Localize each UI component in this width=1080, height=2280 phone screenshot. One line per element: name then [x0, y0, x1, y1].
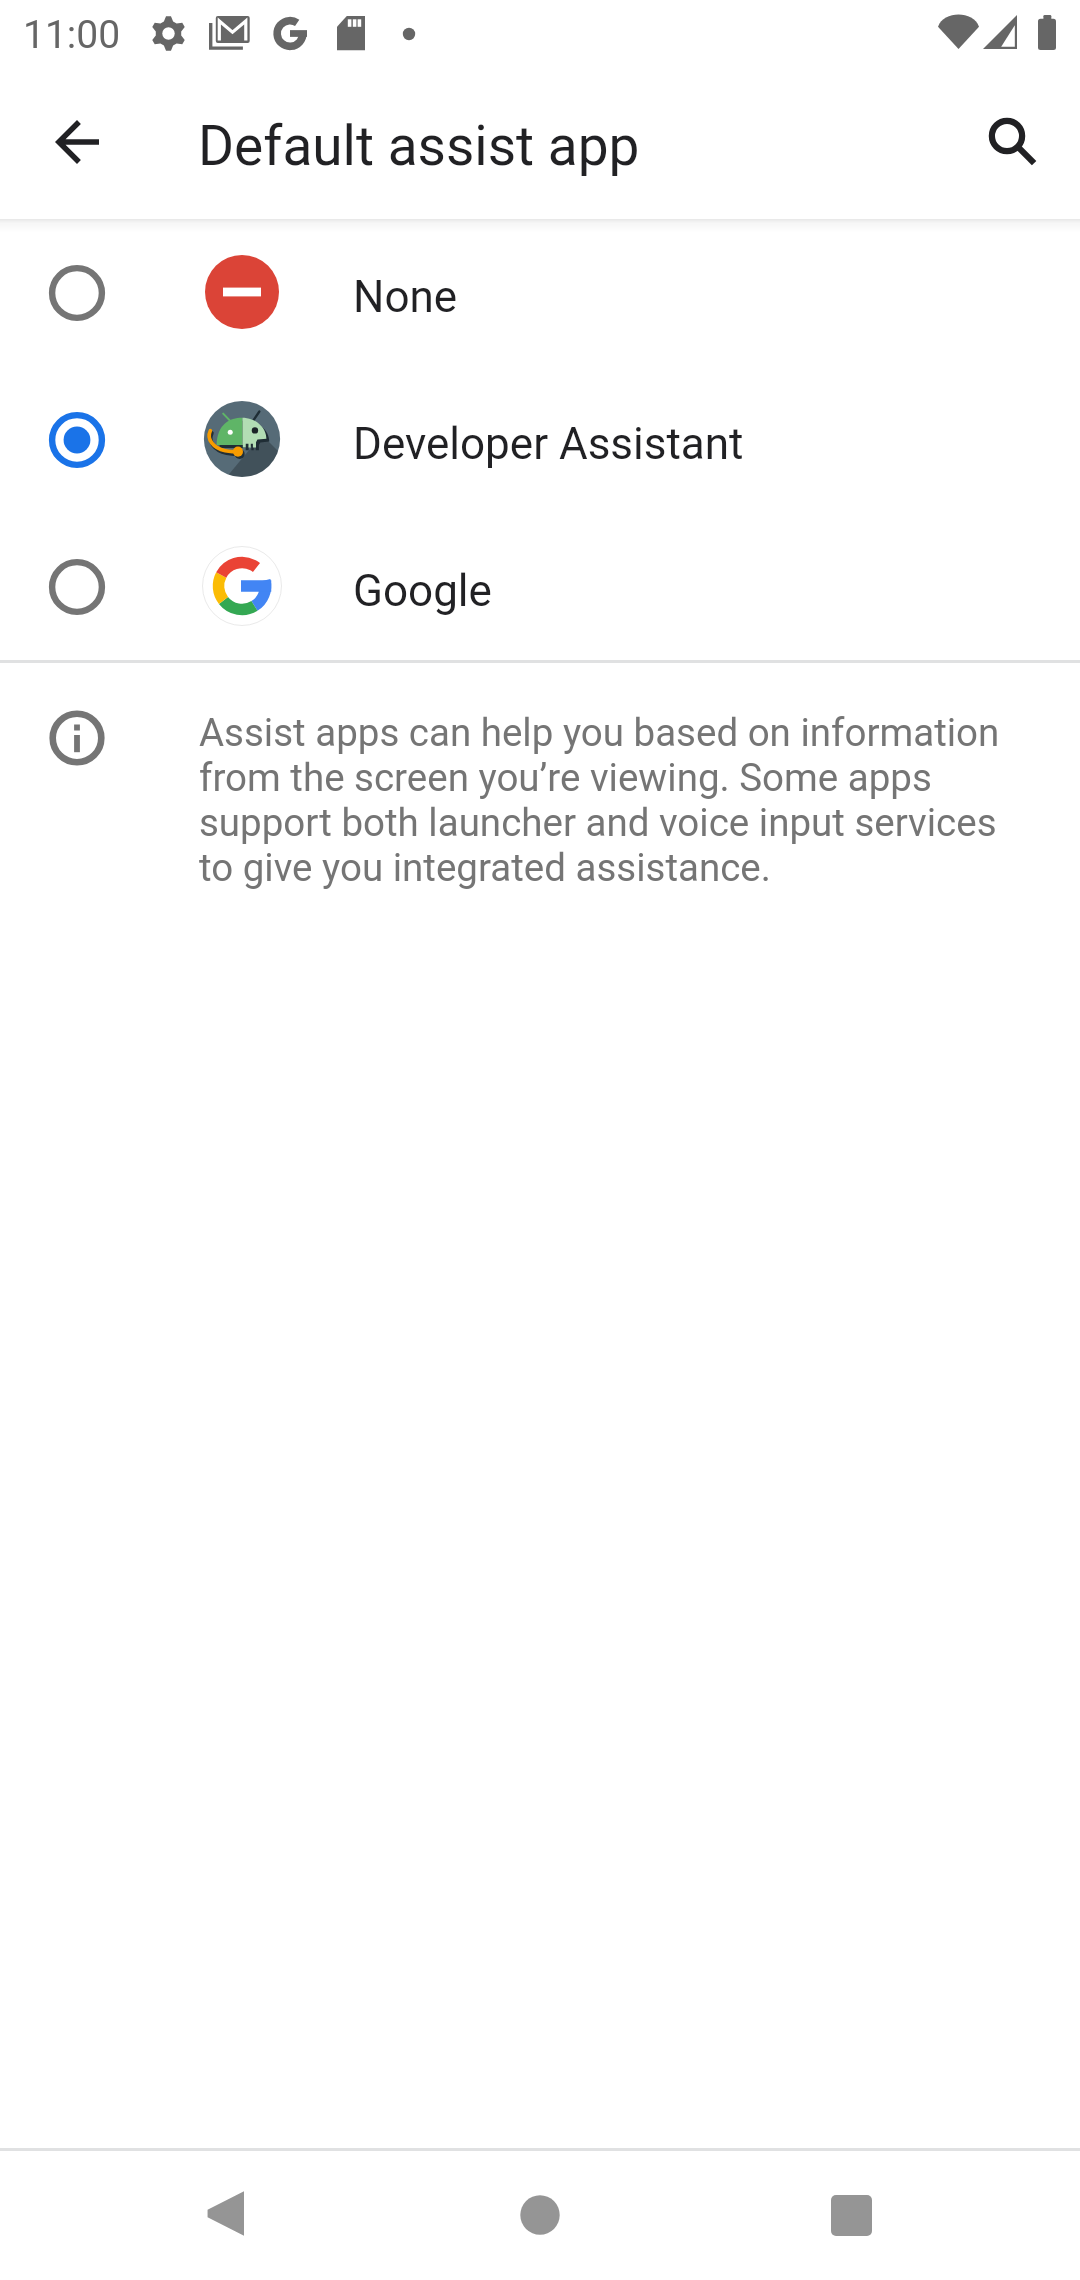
- staticText: Google: [353, 565, 492, 617]
- button[interactable]: Search: [958, 87, 1068, 197]
- button[interactable]: Home: [475, 2150, 605, 2280]
- button[interactable]: Back: [160, 2148, 290, 2278]
- button[interactable]: Developer Assistant: [0, 366, 1080, 513]
- staticText: 11:00: [23, 12, 121, 58]
- button[interactable]: Recent apps: [786, 2150, 916, 2280]
- staticText: None: [353, 271, 458, 323]
- staticText: Assist apps can help you based on inform…: [199, 710, 1015, 890]
- button[interactable]: None: [0, 219, 1080, 366]
- staticText: Developer Assistant: [353, 418, 744, 470]
- button[interactable]: Google: [0, 513, 1080, 660]
- button[interactable]: Navigate up: [22, 87, 132, 197]
- staticText: Default assist app: [198, 114, 640, 178]
